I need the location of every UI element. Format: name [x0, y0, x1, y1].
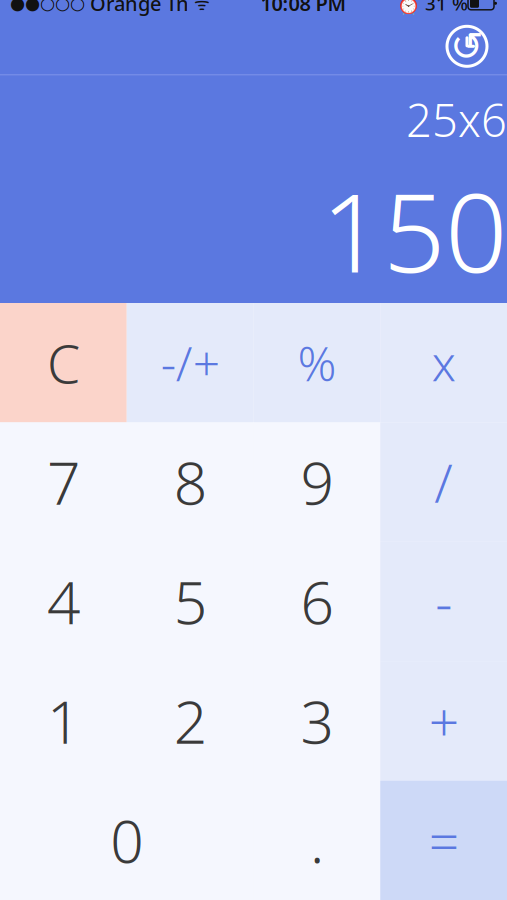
- staticText: 6: [300, 562, 333, 640]
- staticText: 9: [300, 443, 333, 521]
- staticText: =: [429, 805, 459, 876]
- staticText: 7: [47, 443, 80, 521]
- staticText: Orange Tn: [85, 0, 189, 17]
- button[interactable]: 4: [0, 542, 127, 661]
- button[interactable]: =: [380, 781, 507, 900]
- button[interactable]: 1: [0, 661, 127, 781]
- button[interactable]: %: [253, 303, 380, 422]
- staticText: .: [310, 801, 324, 879]
- button[interactable]: 7: [0, 422, 127, 542]
- staticText: +: [429, 685, 459, 756]
- button[interactable]: x: [380, 303, 507, 422]
- staticText: 2: [174, 682, 207, 760]
- button[interactable]: 2: [127, 661, 254, 781]
- staticText: C: [47, 327, 80, 398]
- button[interactable]: -/+: [127, 303, 254, 422]
- button[interactable]: 8: [127, 422, 254, 542]
- staticText: %: [297, 331, 336, 394]
- staticText: ↺: [450, 24, 484, 69]
- staticText: 5: [174, 562, 207, 640]
- staticText: 1: [47, 682, 80, 760]
- button[interactable]: +: [380, 661, 507, 781]
- staticText: ᯤ: [189, 0, 210, 15]
- staticText: x: [432, 331, 456, 394]
- button[interactable]: /: [380, 422, 507, 542]
- button[interactable]: -: [380, 542, 507, 661]
- staticText: 0: [110, 801, 143, 879]
- staticText: 4: [47, 562, 80, 640]
- staticText: 25x6: [406, 89, 507, 149]
- staticText: 8: [174, 443, 207, 521]
- staticText: 10:08 PM: [260, 0, 346, 17]
- button[interactable]: 6: [253, 542, 380, 661]
- button[interactable]: C: [0, 303, 127, 422]
- button[interactable]: History: [439, 18, 495, 74]
- staticText: ●●○○○: [10, 0, 85, 13]
- staticText: ⏰ 31 %: [397, 0, 468, 16]
- staticText: -: [435, 566, 452, 637]
- button[interactable]: 9: [253, 422, 380, 542]
- button[interactable]: 5: [127, 542, 254, 661]
- staticText: /: [434, 447, 453, 517]
- staticText: -/+: [161, 331, 220, 394]
- button[interactable]: .: [253, 781, 380, 900]
- staticText: 3: [300, 682, 333, 760]
- button[interactable]: 0: [0, 781, 253, 900]
- button[interactable]: 3: [253, 661, 380, 781]
- staticText: 150: [321, 157, 507, 303]
